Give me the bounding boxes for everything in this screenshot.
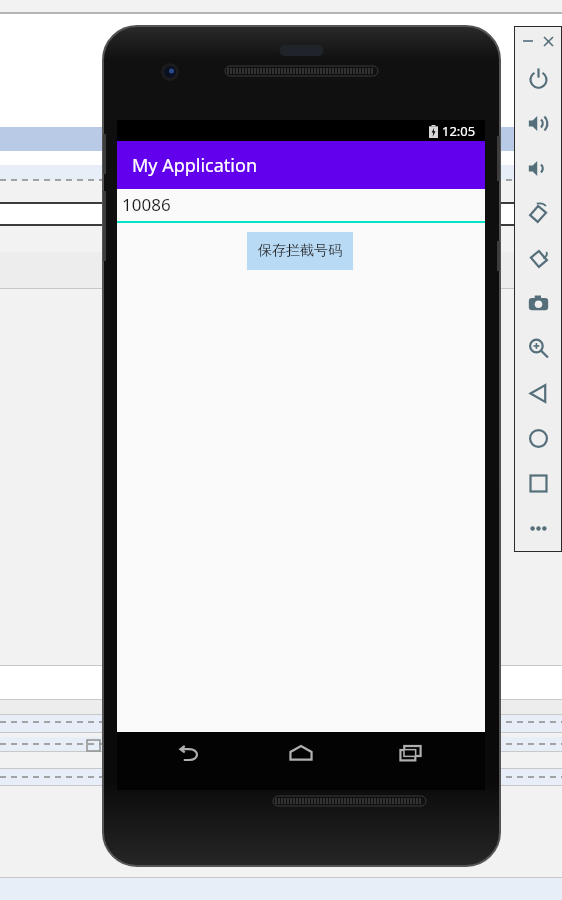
staticText: 保存拦截号码	[258, 242, 342, 260]
button[interactable]: More	[514, 506, 562, 551]
button[interactable]: 10086	[117, 189, 485, 223]
button[interactable]: Minimise	[521, 34, 535, 48]
staticText: 12:05	[442, 122, 476, 140]
button[interactable]: Rotate left	[514, 191, 562, 236]
button[interactable]: My Application	[117, 141, 485, 189]
button[interactable]: Volume up	[514, 101, 562, 146]
button[interactable]: Back	[514, 371, 562, 416]
button[interactable]: Back	[155, 732, 227, 790]
button[interactable]: Zoom	[514, 326, 562, 371]
button[interactable]: Overview	[514, 461, 562, 506]
button[interactable]: 保存拦截号码	[247, 232, 353, 270]
button[interactable]: Home	[514, 416, 562, 461]
staticText: 10086	[122, 193, 171, 216]
button[interactable]: Volume down	[514, 146, 562, 191]
staticText: My Application	[132, 153, 258, 178]
button[interactable]: Close	[541, 34, 555, 48]
button[interactable]: Home	[265, 732, 337, 790]
button[interactable]: Recents	[375, 732, 447, 790]
button[interactable]: Screenshot	[514, 281, 562, 326]
button[interactable]: Rotate right	[514, 236, 562, 281]
button[interactable]: Power	[514, 56, 562, 101]
